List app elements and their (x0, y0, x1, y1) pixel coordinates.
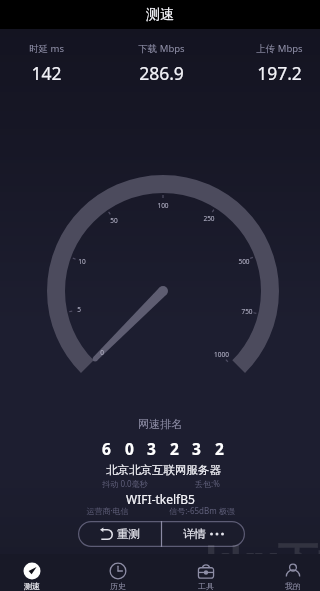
staticText: 0 (125, 438, 134, 459)
staticText: 750 (241, 307, 253, 316)
staticText: 测速 (24, 581, 40, 591)
staticText: 上传 Mbps (256, 42, 303, 55)
staticText: 测速 (146, 6, 174, 24)
staticText: 我的 (285, 581, 301, 591)
staticText: 丢包:% (195, 478, 220, 489)
button[interactable]: 测速 (0, 556, 64, 591)
staticText: 历史 (110, 581, 126, 591)
staticText: 网速排名 (138, 417, 182, 431)
staticText: 2 (215, 438, 224, 459)
staticText: 时延 ms (29, 42, 64, 55)
staticText: WIFI-tkelfB5 (126, 491, 195, 507)
staticText: 详情 (183, 527, 206, 541)
staticText: 信号:-65dBm 极强 (169, 505, 235, 516)
staticText: 5 (77, 305, 81, 314)
button[interactable]: 重测 (78, 521, 161, 547)
staticText: 抖动 0.0毫秒 (102, 478, 148, 489)
staticText: 2 (170, 438, 179, 459)
staticText: 142 (31, 61, 62, 85)
staticText: 197.2 (257, 61, 302, 85)
staticText: 重测 (117, 527, 140, 541)
button[interactable]: 我的 (261, 556, 320, 591)
staticText: www.kkx.net (212, 576, 285, 591)
staticText: 10 (78, 257, 86, 266)
staticText: 50 (110, 216, 118, 225)
staticText: 0 (100, 348, 104, 357)
staticText: 下载 Mbps (138, 42, 185, 55)
staticText: 北京北京互联网服务器 (106, 463, 221, 477)
button[interactable]: 工具 (174, 556, 238, 591)
staticText: 3 (192, 438, 201, 459)
staticText: 6 (102, 438, 111, 459)
staticText: kkx下载 (205, 532, 320, 587)
staticText: 运营商·电信 (86, 505, 129, 516)
staticText: 1000 (214, 350, 229, 359)
staticText: 100 (157, 201, 169, 210)
staticText: 3 (147, 438, 156, 459)
staticText: 工具 (198, 581, 214, 591)
button[interactable]: 详情 (161, 521, 245, 547)
button[interactable]: 历史 (86, 556, 150, 591)
staticText: 286.9 (139, 61, 184, 85)
staticText: 250 (203, 214, 215, 223)
staticText: 500 (238, 257, 250, 266)
